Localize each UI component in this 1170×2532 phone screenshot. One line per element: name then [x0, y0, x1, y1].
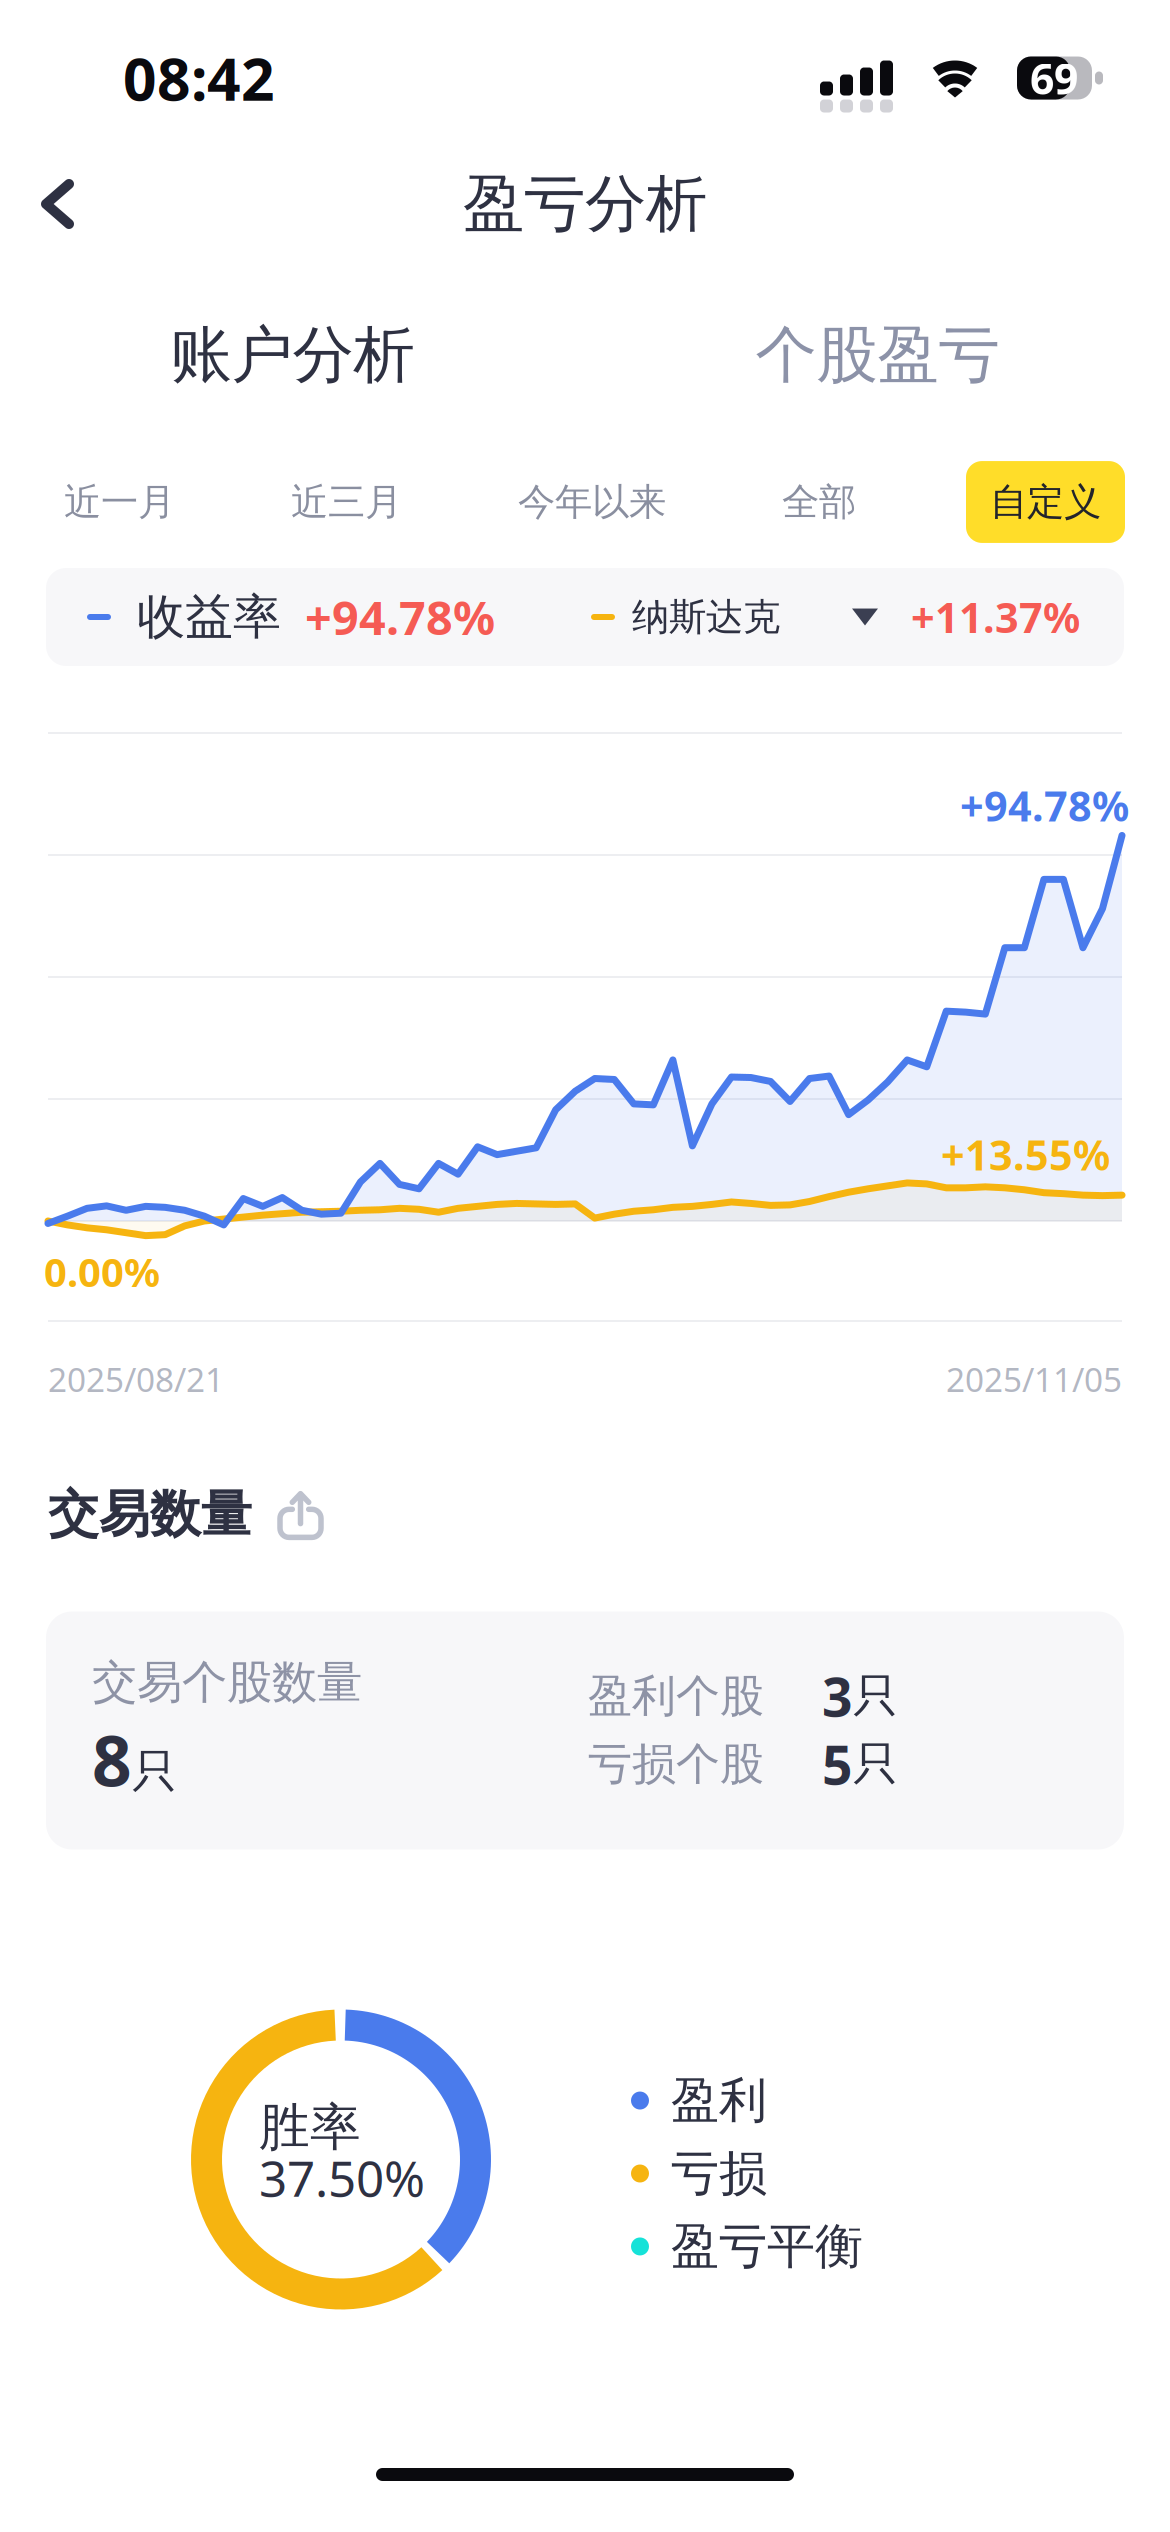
staticText: 只 — [853, 1736, 898, 1792]
button[interactable]: 账户分析 — [0, 305, 585, 405]
button[interactable]: 近一月 — [58, 461, 181, 543]
staticText: 只 — [132, 1743, 177, 1799]
staticText: 今年以来 — [518, 479, 666, 525]
staticText: 个股盈亏 — [755, 317, 999, 393]
staticText: 盈利 — [671, 2071, 767, 2130]
staticText: 近一月 — [64, 479, 175, 525]
staticText: 8 — [92, 1713, 132, 1806]
staticText: +94.78% — [960, 778, 1129, 833]
button[interactable]: 返回 — [0, 156, 99, 252]
button[interactable]: 自定义 — [966, 461, 1125, 543]
staticText: 自定义 — [990, 479, 1101, 525]
staticText: 亏损 — [671, 2144, 767, 2203]
staticText: 69 — [1030, 50, 1078, 106]
button[interactable]: 今年以来 — [512, 461, 672, 543]
staticText: 0.00% — [44, 1245, 160, 1298]
staticText: 盈亏分析 — [463, 166, 707, 242]
staticText: 37.50% — [259, 2145, 425, 2210]
staticText: 亏损个股 — [588, 1737, 764, 1791]
staticText: 账户分析 — [170, 317, 414, 393]
button[interactable]: 分享 — [280, 1491, 321, 1537]
staticText: 交易个股数量 — [92, 1655, 362, 1710]
staticText: 盈亏平衡 — [671, 2217, 863, 2276]
staticText: 3 — [822, 1661, 853, 1731]
staticText: 交易数量 — [48, 1483, 252, 1545]
staticText: 2025/08/21 — [48, 1357, 224, 1401]
staticText: 5 — [822, 1729, 853, 1799]
staticText: 胜率 — [259, 2096, 361, 2159]
staticText: 只 — [853, 1668, 898, 1724]
staticText: +11.37% — [911, 590, 1080, 644]
staticText: 全部 — [782, 479, 856, 525]
staticText: 2025/11/05 — [946, 1357, 1122, 1401]
staticText: 近三月 — [291, 479, 402, 525]
staticText: 08:42 — [123, 39, 275, 117]
button[interactable]: 全部 — [776, 461, 862, 543]
staticText: 收益率 — [137, 587, 281, 646]
staticText: 纳斯达克 — [632, 594, 780, 640]
button[interactable]: 个股盈亏 — [585, 305, 1170, 405]
staticText: +13.55% — [941, 1127, 1110, 1182]
button[interactable]: 近三月 — [285, 461, 408, 543]
staticText: +94.78% — [305, 586, 495, 648]
staticText: 盈利个股 — [588, 1669, 764, 1723]
